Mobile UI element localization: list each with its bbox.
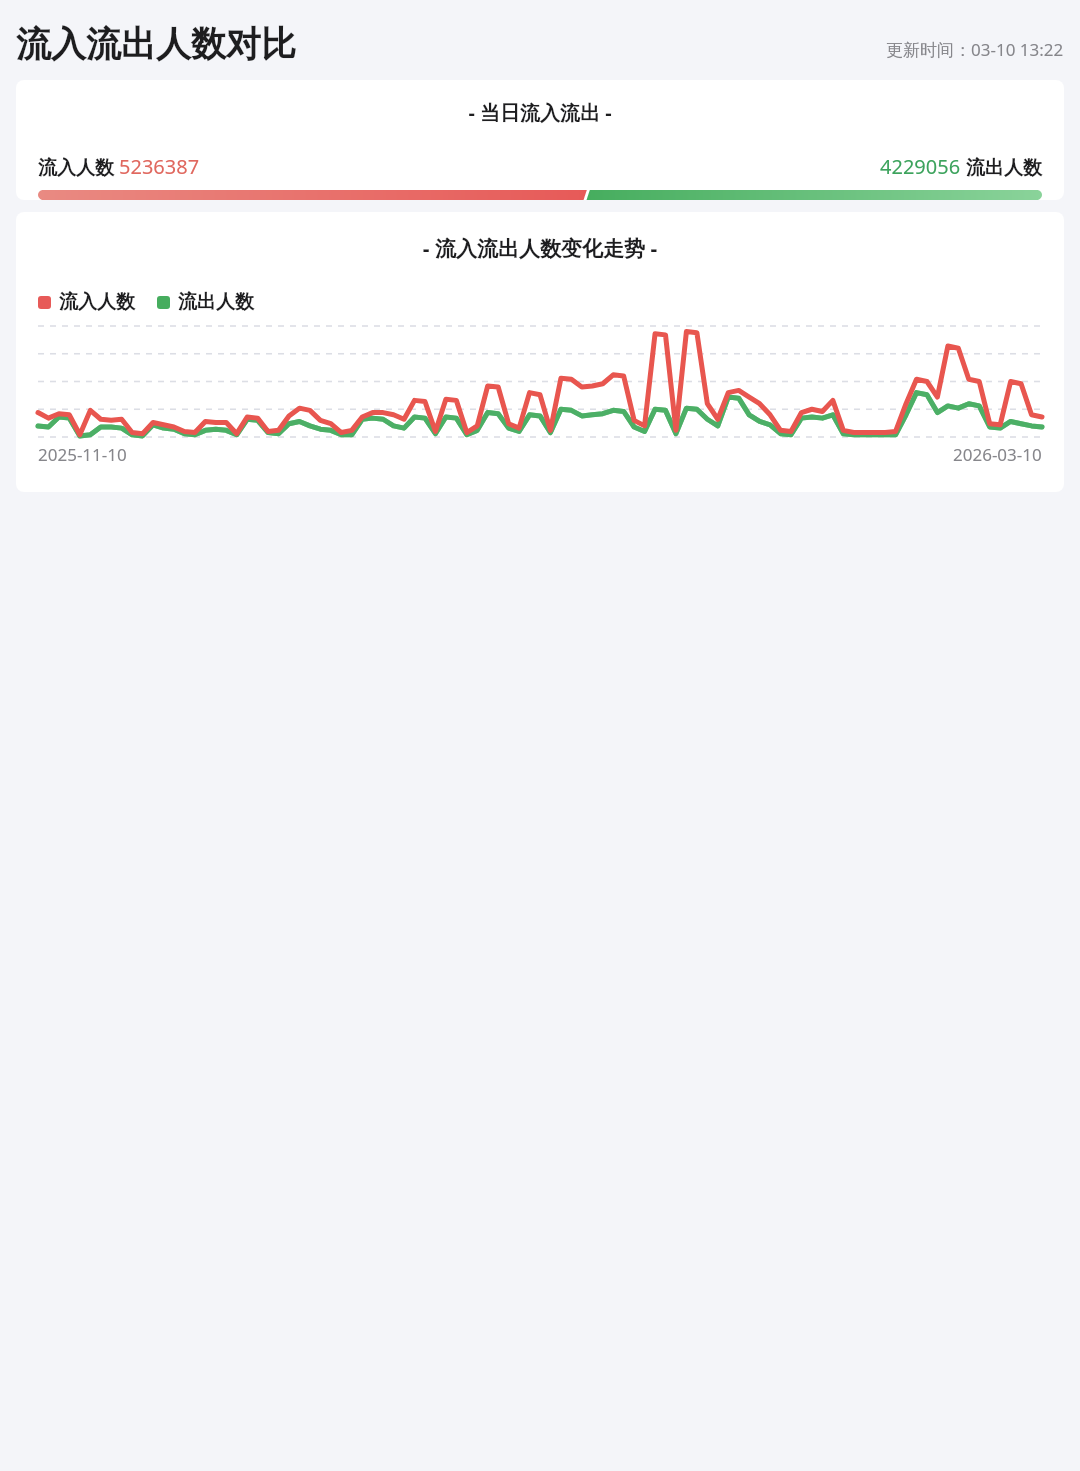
staticText: 流出人数 <box>961 154 1042 180</box>
staticText: - 流入流出人数变化走势 - <box>16 234 1064 263</box>
button[interactable]: 流入人数 <box>38 290 135 314</box>
staticText: 2026-03-10 <box>953 443 1042 466</box>
button[interactable]: - 流入流出人数变化走势 - <box>16 212 1064 492</box>
staticText: 流入人数 <box>59 290 135 314</box>
staticText: 流出人数 <box>178 290 254 314</box>
staticText: - 当日流入流出 - <box>16 99 1064 126</box>
button[interactable]: 流出人数 <box>157 290 254 314</box>
staticText: 流入流出人数对比 <box>16 22 296 66</box>
staticText: 4229056 <box>880 153 961 180</box>
staticText: 更新时间：03-10 13:22 <box>886 38 1064 61</box>
button[interactable]: - 当日流入流出 - <box>16 80 1064 200</box>
staticText: 流入人数 <box>38 154 119 180</box>
staticText: 5236387 <box>119 153 200 180</box>
staticText: 2025-11-10 <box>38 443 127 466</box>
